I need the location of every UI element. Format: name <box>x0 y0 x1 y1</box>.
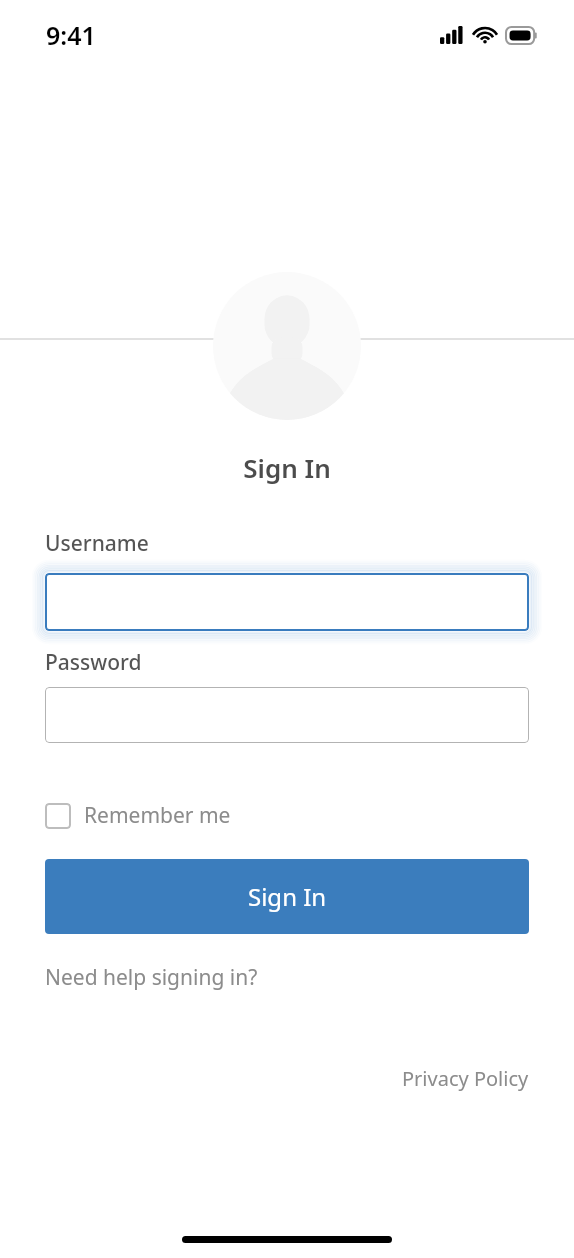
button[interactable]: Remember me <box>45 801 231 830</box>
staticText: Remember me <box>84 801 231 830</box>
button[interactable]: Password field <box>45 687 529 743</box>
button[interactable]: Need help signing in? <box>45 963 258 992</box>
staticText: Password <box>45 648 142 677</box>
staticText: Username <box>45 529 149 558</box>
staticText: Privacy Policy <box>402 1065 529 1092</box>
staticText: Sign In <box>248 880 327 913</box>
staticText: Need help signing in? <box>45 963 258 992</box>
button[interactable]: Sign In <box>45 859 529 934</box>
staticText: Sign In <box>0 450 574 485</box>
button[interactable]: Username field <box>45 573 529 631</box>
staticText: 9:41 <box>46 18 96 52</box>
button[interactable]: Privacy Policy <box>402 1065 529 1092</box>
